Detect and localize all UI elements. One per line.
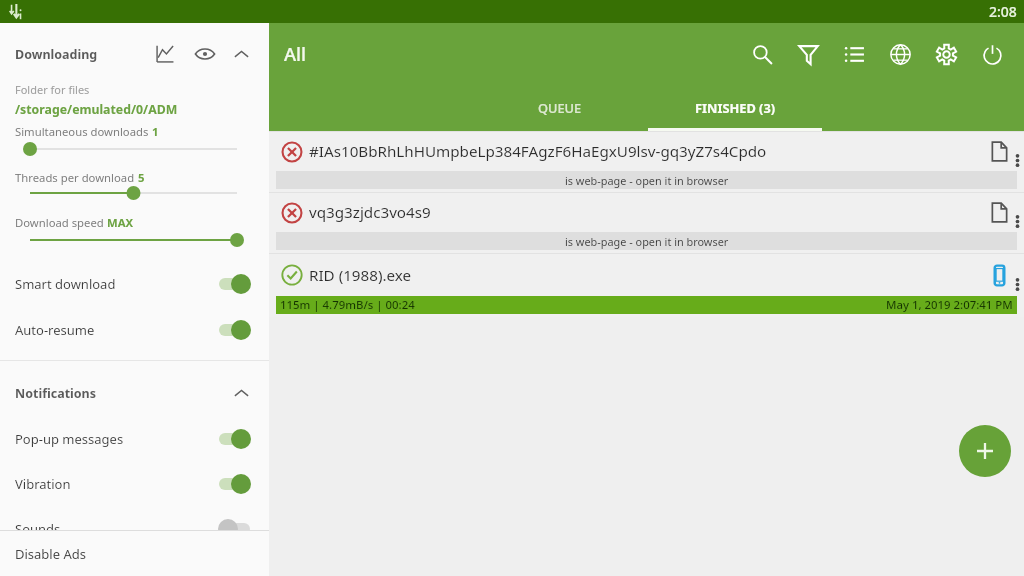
button[interactable]: Preview xyxy=(188,37,222,71)
staticText: Pop-up messages xyxy=(15,430,124,448)
button[interactable]: Add new download xyxy=(959,425,1011,477)
button[interactable] xyxy=(30,140,237,158)
staticText: 2:08 xyxy=(989,2,1017,21)
staticText: 1 xyxy=(152,124,159,139)
staticText: #IAs10BbRhLhHUmpbeLp384FAgzF6HaEgxU9lsv-… xyxy=(309,141,988,162)
staticText: Downloading xyxy=(15,46,98,63)
staticText: Auto-resume xyxy=(15,321,95,339)
button[interactable] xyxy=(30,184,237,202)
button[interactable]: Notifications xyxy=(0,371,269,415)
button[interactable]: Auto-resume xyxy=(0,307,269,353)
button[interactable]: More options xyxy=(1011,254,1024,296)
button[interactable]: More options xyxy=(1011,193,1024,232)
button[interactable]: Collapse notifications xyxy=(224,376,258,410)
staticText: vq3g3zjdc3vo4s9 xyxy=(309,202,988,223)
button[interactable]: Open browser xyxy=(877,31,923,77)
staticText: Threads per download xyxy=(15,170,138,185)
staticText: All xyxy=(284,41,307,66)
staticText: 5 xyxy=(138,170,145,185)
staticText: MAX xyxy=(107,215,134,230)
button[interactable]: Statistics xyxy=(148,37,182,71)
button[interactable]: RID (1988).exe xyxy=(269,253,1024,317)
staticText: Download speed xyxy=(15,215,107,230)
button[interactable]: Settings xyxy=(923,31,969,77)
button[interactable]: Pop-up messages xyxy=(0,416,269,462)
staticText: is web-page - open it in browser xyxy=(565,234,729,249)
button[interactable] xyxy=(30,231,237,249)
button[interactable]: View as list xyxy=(831,31,877,77)
staticText: Folder for files xyxy=(15,82,90,97)
button[interactable]: Search xyxy=(739,31,785,77)
staticText: FINISHED (3) xyxy=(695,99,776,116)
button[interactable]: vq3g3zjdc3vo4s9 xyxy=(269,192,1024,253)
button[interactable]: FINISHED (3) xyxy=(648,84,822,131)
staticText: RID (1988).exe xyxy=(309,265,988,286)
button[interactable]: Exit xyxy=(969,31,1015,77)
button[interactable]: Sounds xyxy=(0,506,269,552)
staticText: Smart download xyxy=(15,275,116,293)
staticText: Notifications xyxy=(15,385,97,402)
staticText: QUEUE xyxy=(538,99,582,116)
staticText: May 1, 2019 2:07:41 PM xyxy=(886,297,1013,313)
staticText: Vibration xyxy=(15,475,71,493)
staticText: Disable Ads xyxy=(15,545,86,563)
button[interactable]: Vibration xyxy=(0,461,269,507)
staticText: /storage/emulated/0/ADM xyxy=(15,101,178,118)
button[interactable]: Collapse downloading xyxy=(224,37,258,71)
button[interactable]: More options xyxy=(1011,132,1024,171)
button[interactable]: Downloading xyxy=(0,32,269,76)
staticText: is web-page - open it in browser xyxy=(565,173,729,188)
button[interactable]: QUEUE xyxy=(472,84,648,131)
staticText: Sounds xyxy=(15,520,61,538)
staticText: 115m | 4.79mB/s | 00:24 xyxy=(280,297,415,313)
button[interactable]: Filter xyxy=(785,31,831,77)
button[interactable]: Smart download xyxy=(0,261,269,307)
staticText: Simultaneous downloads xyxy=(15,124,152,139)
button[interactable]: #IAs10BbRhLhHUmpbeLp384FAgzF6HaEgxU9lsv-… xyxy=(269,131,1024,192)
button[interactable]: Disable Ads xyxy=(0,531,269,576)
button[interactable]: Folder for files xyxy=(0,79,269,119)
